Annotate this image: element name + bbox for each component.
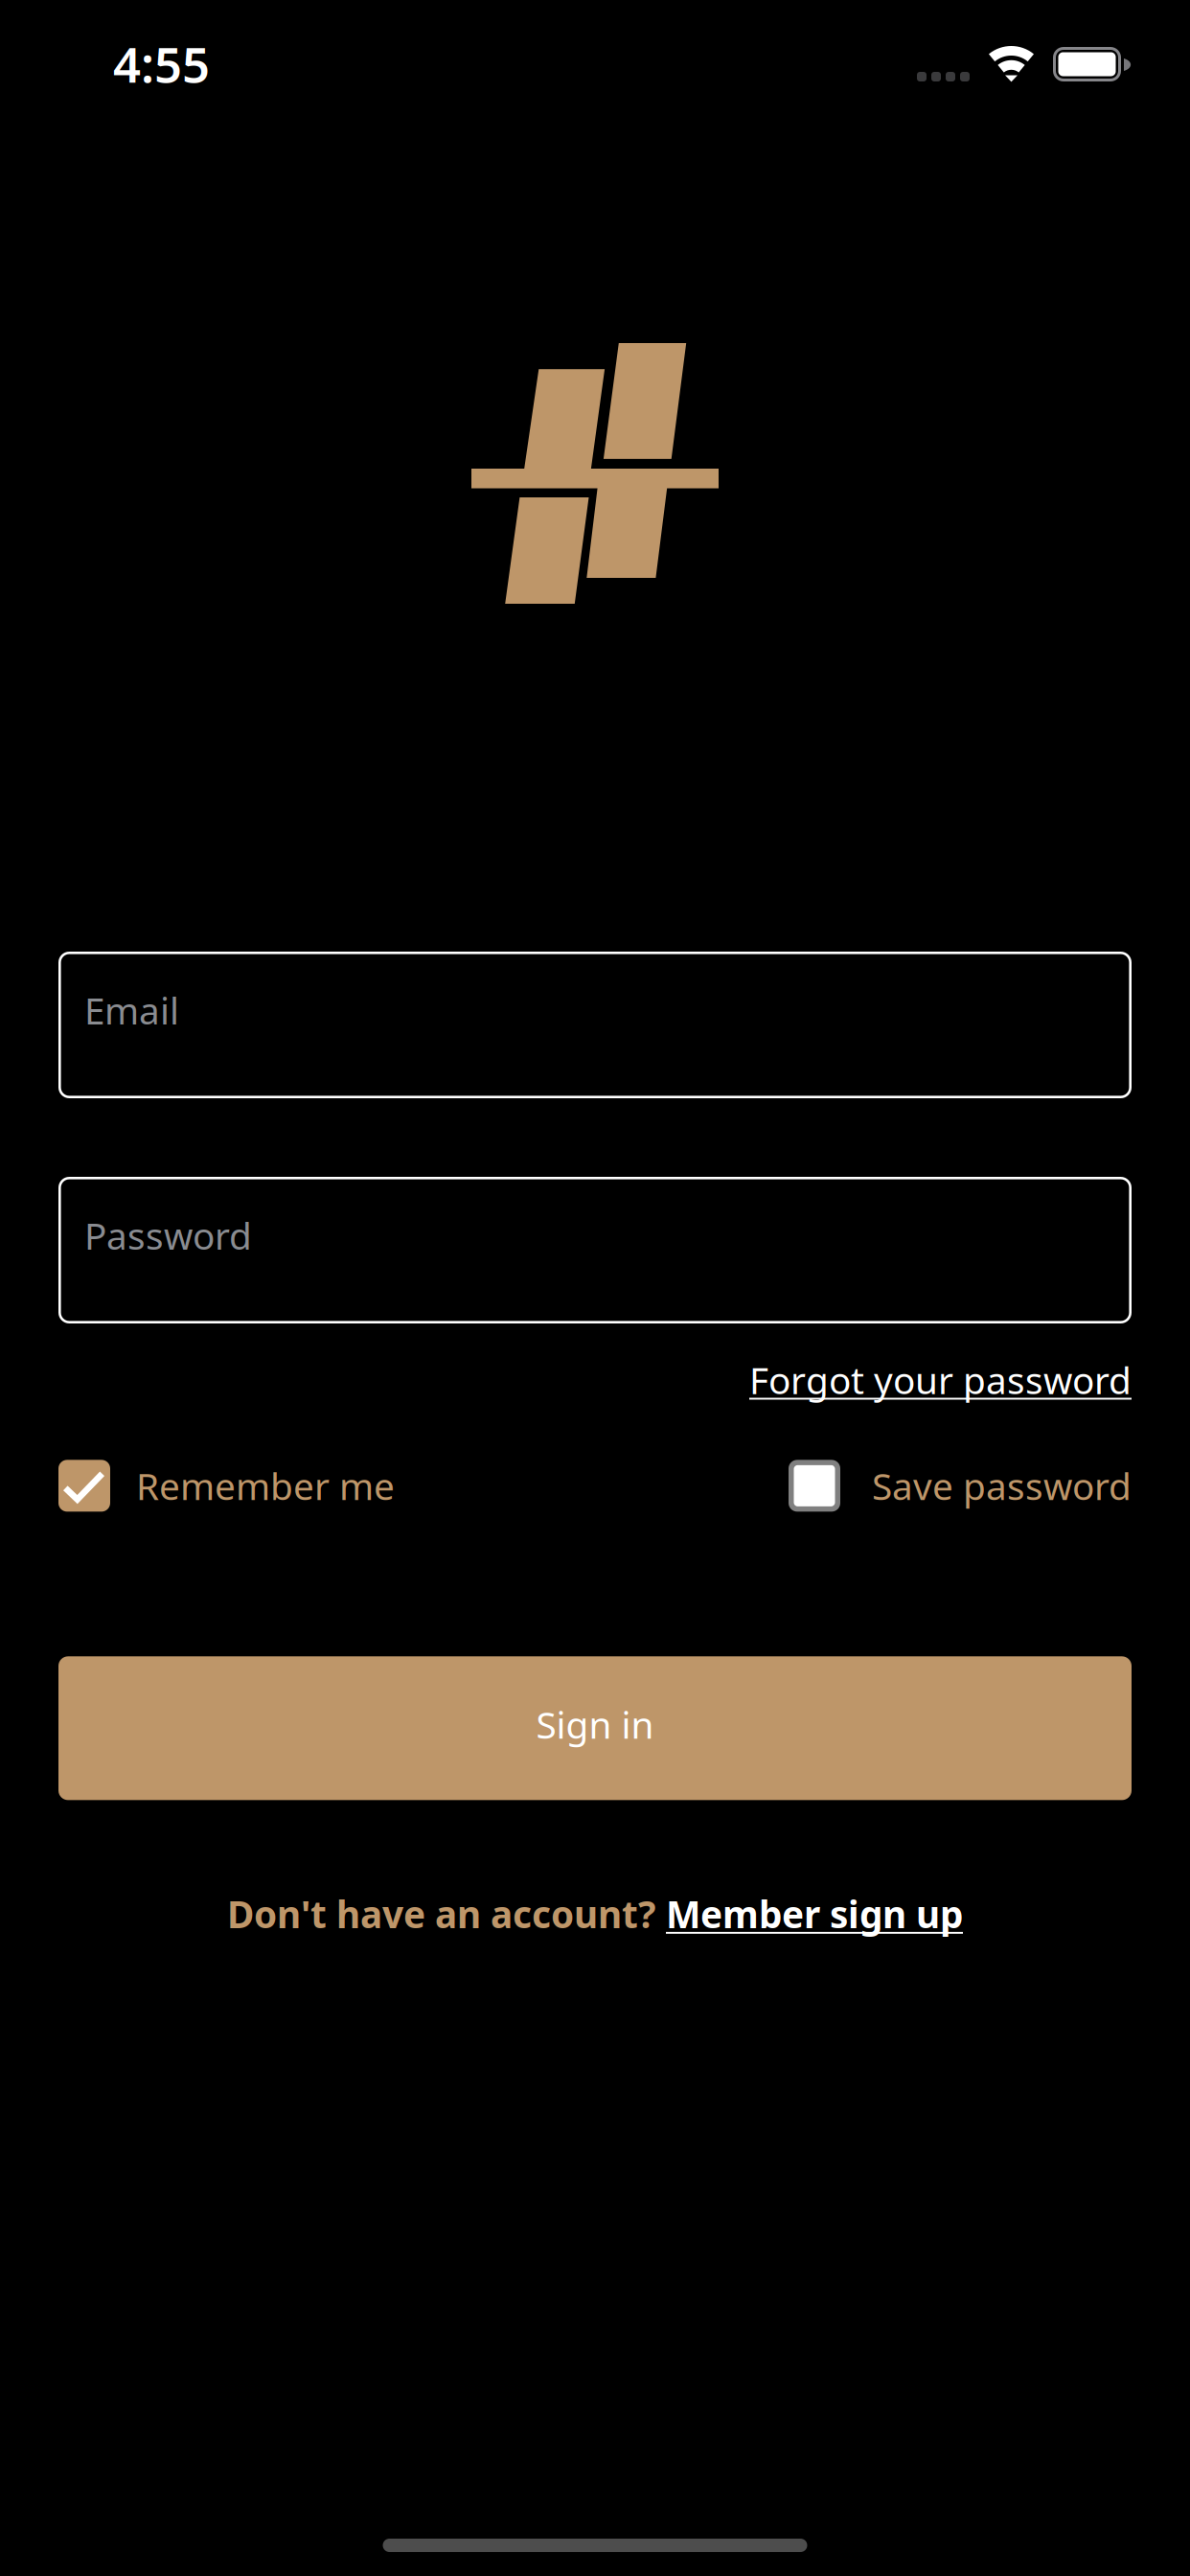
button[interactable]: Email: [58, 952, 1132, 1098]
staticText: 4:55: [113, 32, 210, 96]
staticText: Email: [84, 985, 179, 1035]
button[interactable]: Password: [58, 1177, 1132, 1323]
button[interactable]: Sign in: [58, 1656, 1132, 1800]
staticText: Sign in: [536, 1700, 654, 1749]
staticText: Member sign up: [666, 1889, 963, 1938]
staticText: Save password: [872, 1461, 1132, 1510]
staticText: Remember me: [136, 1461, 395, 1510]
button[interactable]: Member sign up: [666, 1889, 963, 1938]
staticText: Don't have an account?: [227, 1889, 655, 1938]
staticText: Password: [84, 1211, 252, 1260]
button[interactable]: Save password: [789, 1460, 1132, 1512]
button[interactable]: Forgot your password: [749, 1355, 1132, 1404]
staticText: Forgot your password: [749, 1355, 1132, 1404]
button[interactable]: Remember me: [58, 1460, 395, 1512]
